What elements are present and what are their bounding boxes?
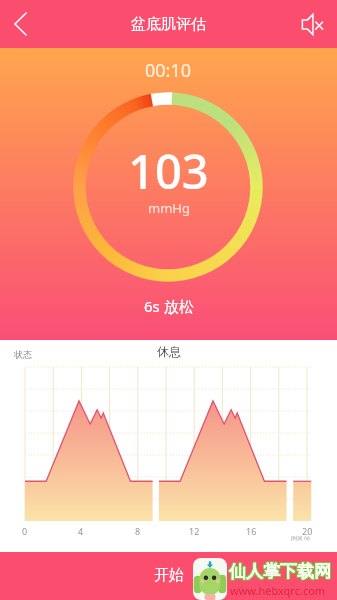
button[interactable]: Back bbox=[0, 3, 42, 45]
staticText: 仙人掌下载网 bbox=[229, 561, 331, 582]
staticText: 仙人掌下载网 bbox=[228, 561, 330, 582]
staticText: 仙人掌下载网 bbox=[230, 560, 332, 581]
button[interactable]: 开始 bbox=[124, 558, 214, 593]
staticText: 休息 bbox=[157, 344, 181, 359]
staticText: 仙人掌下载网 bbox=[228, 562, 330, 583]
staticText: 仙人掌下载网 bbox=[229, 560, 331, 581]
staticText: 4 bbox=[78, 525, 84, 537]
staticText: 00:10 bbox=[145, 58, 192, 83]
staticText: 仙人掌下载网 bbox=[229, 562, 331, 583]
staticText: 6s 放松 bbox=[144, 296, 194, 316]
staticText: 仙人掌下载网 bbox=[230, 561, 332, 582]
staticText: 仙人掌下载网 bbox=[228, 560, 330, 581]
staticText: 0 bbox=[22, 525, 28, 537]
staticText: 仙人掌下载网 bbox=[230, 562, 332, 583]
staticText: 状态 bbox=[14, 349, 32, 360]
staticText: www.hebxqrc.com bbox=[230, 583, 326, 598]
button[interactable]: Mute sound bbox=[291, 3, 333, 45]
staticText: 20 bbox=[302, 525, 313, 537]
staticText: 103 bbox=[128, 139, 209, 203]
staticText: 8 bbox=[135, 525, 141, 537]
staticText: 开始 bbox=[154, 566, 184, 585]
staticText: 盆底肌评估 bbox=[131, 15, 206, 34]
staticText: mmHg bbox=[148, 199, 190, 217]
staticText: 16 bbox=[246, 525, 257, 537]
staticText: (时间 /s) bbox=[291, 535, 310, 542]
staticText: 12 bbox=[189, 525, 200, 537]
